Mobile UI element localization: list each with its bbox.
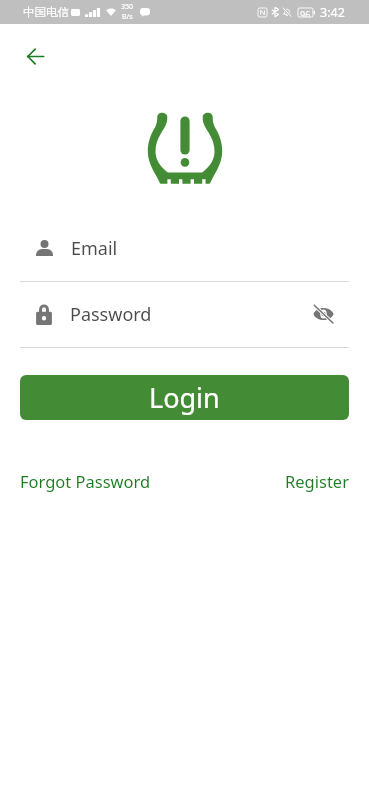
- staticText: Password: [70, 302, 152, 326]
- button[interactable]: Back: [21, 42, 49, 70]
- staticText: Login: [149, 379, 220, 416]
- staticText: 96: [300, 8, 311, 17]
- staticText: Forgot Password: [20, 470, 151, 492]
- staticText: Email: [71, 236, 118, 260]
- staticText: 中国电信: [23, 5, 69, 19]
- button[interactable]: Register: [285, 470, 349, 492]
- staticText: Register: [285, 470, 349, 492]
- staticText: B/s: [122, 12, 133, 22]
- button[interactable]: Forgot Password: [20, 470, 151, 492]
- staticText: 350: [121, 2, 134, 12]
- staticText: 3:42: [320, 4, 345, 21]
- button[interactable]: Show password: [311, 302, 335, 326]
- button[interactable]: Login: [20, 375, 349, 420]
